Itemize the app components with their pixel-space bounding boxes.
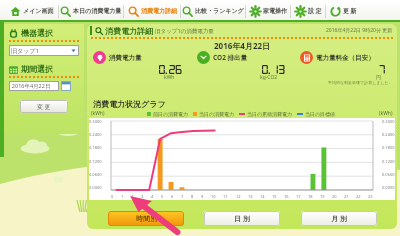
staticText: 前日の消費電力: [153, 111, 189, 117]
staticText: 変 更: [37, 103, 51, 111]
button[interactable]: 2016年4月22日: [9, 81, 59, 91]
staticText: 9: [201, 194, 204, 199]
staticText: 10: [211, 194, 216, 199]
staticText: 4: [151, 194, 154, 199]
staticText: 12: [236, 194, 241, 199]
staticText: 設 定: [308, 7, 322, 15]
staticText: 0.0000: [89, 185, 102, 190]
staticText: 20: [332, 194, 337, 199]
staticText: 消費電力詳細: [105, 26, 153, 36]
staticText: 18: [308, 194, 313, 199]
staticText: 0.1200: [89, 159, 102, 164]
staticText: 2016年4月22日: [9, 82, 51, 90]
button[interactable]: 月 別: [301, 211, 377, 226]
staticText: 時間別: [136, 214, 157, 223]
button[interactable]: カレンダー: [61, 81, 71, 91]
staticText: 6: [171, 194, 174, 199]
staticText: CO2 排出量: [213, 53, 248, 62]
button[interactable]: 消費電力詳細: [124, 0, 180, 22]
button[interactable]: 旧タップ1: [9, 45, 79, 56]
staticText: 13: [248, 194, 253, 199]
button[interactable]: 更 新: [326, 0, 360, 22]
staticText: 電力量料金（目安）: [316, 54, 375, 62]
staticText: 8: [191, 194, 194, 199]
staticText: 0.1200: [382, 159, 395, 164]
staticText: 円: [376, 74, 381, 80]
staticText: 本日の消費電力量: [73, 7, 122, 15]
staticText: 23: [368, 194, 373, 199]
staticText: 14: [260, 194, 265, 199]
staticText: 0: [111, 194, 114, 199]
button[interactable]: 家電操作: [246, 0, 290, 22]
staticText: 22: [356, 194, 361, 199]
staticText: 2016年4月22日 9時20分 更新: [326, 27, 393, 34]
staticText: 1: [121, 194, 124, 199]
staticText: 当日の目標値: [305, 111, 336, 117]
staticText: 0.3000: [382, 119, 395, 124]
button[interactable]: 変 更: [20, 100, 68, 113]
staticText: 月 別: [331, 214, 347, 224]
staticText: 0.2400: [382, 132, 395, 137]
staticText: 当日の消費電力: [199, 111, 235, 117]
button[interactable]: 比較・ランキング: [181, 0, 245, 22]
staticText: 0.1800: [89, 145, 102, 150]
staticText: 機器選択: [21, 28, 53, 38]
staticText: 消費電力状況グラフ: [93, 99, 166, 109]
button[interactable]: 設 定: [291, 0, 325, 22]
staticText: 更 新: [343, 7, 357, 15]
staticText: 0.0600: [89, 172, 102, 177]
staticText: 消費電力詳細: [141, 7, 177, 15]
staticText: 旧タップ1の消費電力量: [155, 27, 214, 35]
button[interactable]: 日 別: [204, 211, 280, 226]
button[interactable]: 時間別: [108, 211, 184, 226]
staticText: (kWh): [91, 110, 105, 117]
staticText: 7: [181, 194, 184, 199]
staticText: 3: [141, 194, 144, 199]
staticText: 旧タップ1: [11, 47, 39, 55]
staticText: 0.3000: [89, 119, 102, 124]
staticText: 0.1800: [382, 145, 395, 150]
staticText: 0.0600: [382, 172, 395, 177]
staticText: (kWh): [379, 110, 393, 117]
staticText: 19: [320, 194, 325, 199]
button[interactable]: メイン画面: [6, 0, 58, 22]
staticText: kg-CO2: [260, 74, 278, 81]
staticText: 11: [223, 194, 228, 199]
staticText: 家電操作: [263, 7, 287, 15]
staticText: 平均的な料金単価で計算しました。: [328, 80, 393, 85]
staticText: 2016年4月22日: [214, 40, 271, 51]
staticText: 2: [131, 194, 134, 199]
staticText: kWh: [164, 74, 175, 81]
staticText: 0.2400: [89, 132, 102, 137]
button[interactable]: 本日の消費電力量: [59, 0, 123, 22]
staticText: 16: [284, 194, 289, 199]
staticText: 5: [161, 194, 164, 199]
staticText: 期間選択: [21, 64, 53, 74]
staticText: メイン画面: [23, 7, 54, 15]
staticText: 比較・ランキング: [195, 7, 244, 15]
staticText: 17: [296, 194, 301, 199]
staticText: 当日の累積消費電力: [247, 111, 293, 117]
staticText: 日 別: [234, 214, 250, 224]
staticText: 0.0000: [382, 185, 395, 190]
staticText: 15: [272, 194, 277, 199]
staticText: 消費電力量: [109, 54, 142, 62]
staticText: 21: [344, 194, 349, 199]
